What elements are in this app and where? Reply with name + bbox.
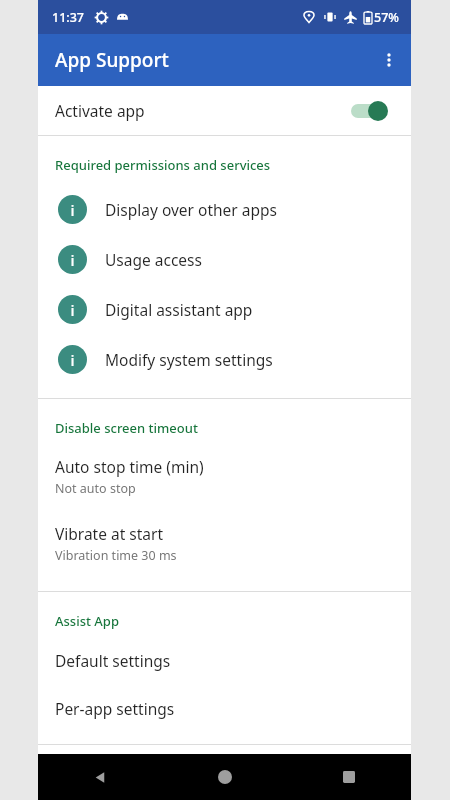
button[interactable]: i bbox=[38, 284, 411, 334]
button[interactable]: Home bbox=[163, 754, 287, 800]
staticText: Not auto stop bbox=[55, 480, 136, 497]
staticText: Vibrate at start bbox=[55, 523, 164, 544]
staticText: Auto stop time (min) bbox=[55, 456, 204, 477]
button[interactable]: Back bbox=[38, 754, 163, 800]
button[interactable]: Per-app settings bbox=[38, 684, 411, 732]
staticText: i bbox=[70, 200, 75, 220]
staticText: Digital assistant app bbox=[105, 299, 253, 320]
staticText: Usage access bbox=[105, 249, 202, 270]
staticText: Required permissions and services bbox=[55, 156, 271, 174]
staticText: Disable screen timeout bbox=[55, 419, 198, 437]
button[interactable]: Vibrate at start bbox=[38, 510, 411, 577]
button[interactable]: More options bbox=[367, 38, 411, 82]
staticText: Vibration time 30 ms bbox=[55, 547, 177, 564]
staticText: 11:37 bbox=[52, 9, 85, 26]
staticText: Activate app bbox=[55, 100, 145, 121]
button[interactable]: Recent apps bbox=[287, 754, 411, 800]
staticText: Display over other apps bbox=[105, 199, 277, 220]
staticText: Default settings bbox=[55, 650, 171, 671]
staticText: Modify system settings bbox=[105, 349, 273, 370]
staticText: App Support bbox=[55, 47, 169, 73]
staticText: Per-app settings bbox=[55, 698, 175, 719]
staticText: i bbox=[70, 250, 75, 270]
button[interactable]: Default settings bbox=[38, 636, 411, 684]
staticText: i bbox=[70, 300, 75, 320]
staticText: 57% bbox=[374, 9, 399, 26]
button[interactable]: Auto stop time (min) bbox=[38, 443, 411, 510]
staticText: Assist App bbox=[55, 612, 119, 630]
button[interactable]: i bbox=[38, 184, 411, 234]
button[interactable]: i bbox=[38, 334, 411, 384]
button[interactable]: i bbox=[38, 234, 411, 284]
staticText: i bbox=[70, 350, 75, 370]
button[interactable]: Activate app bbox=[38, 86, 411, 135]
